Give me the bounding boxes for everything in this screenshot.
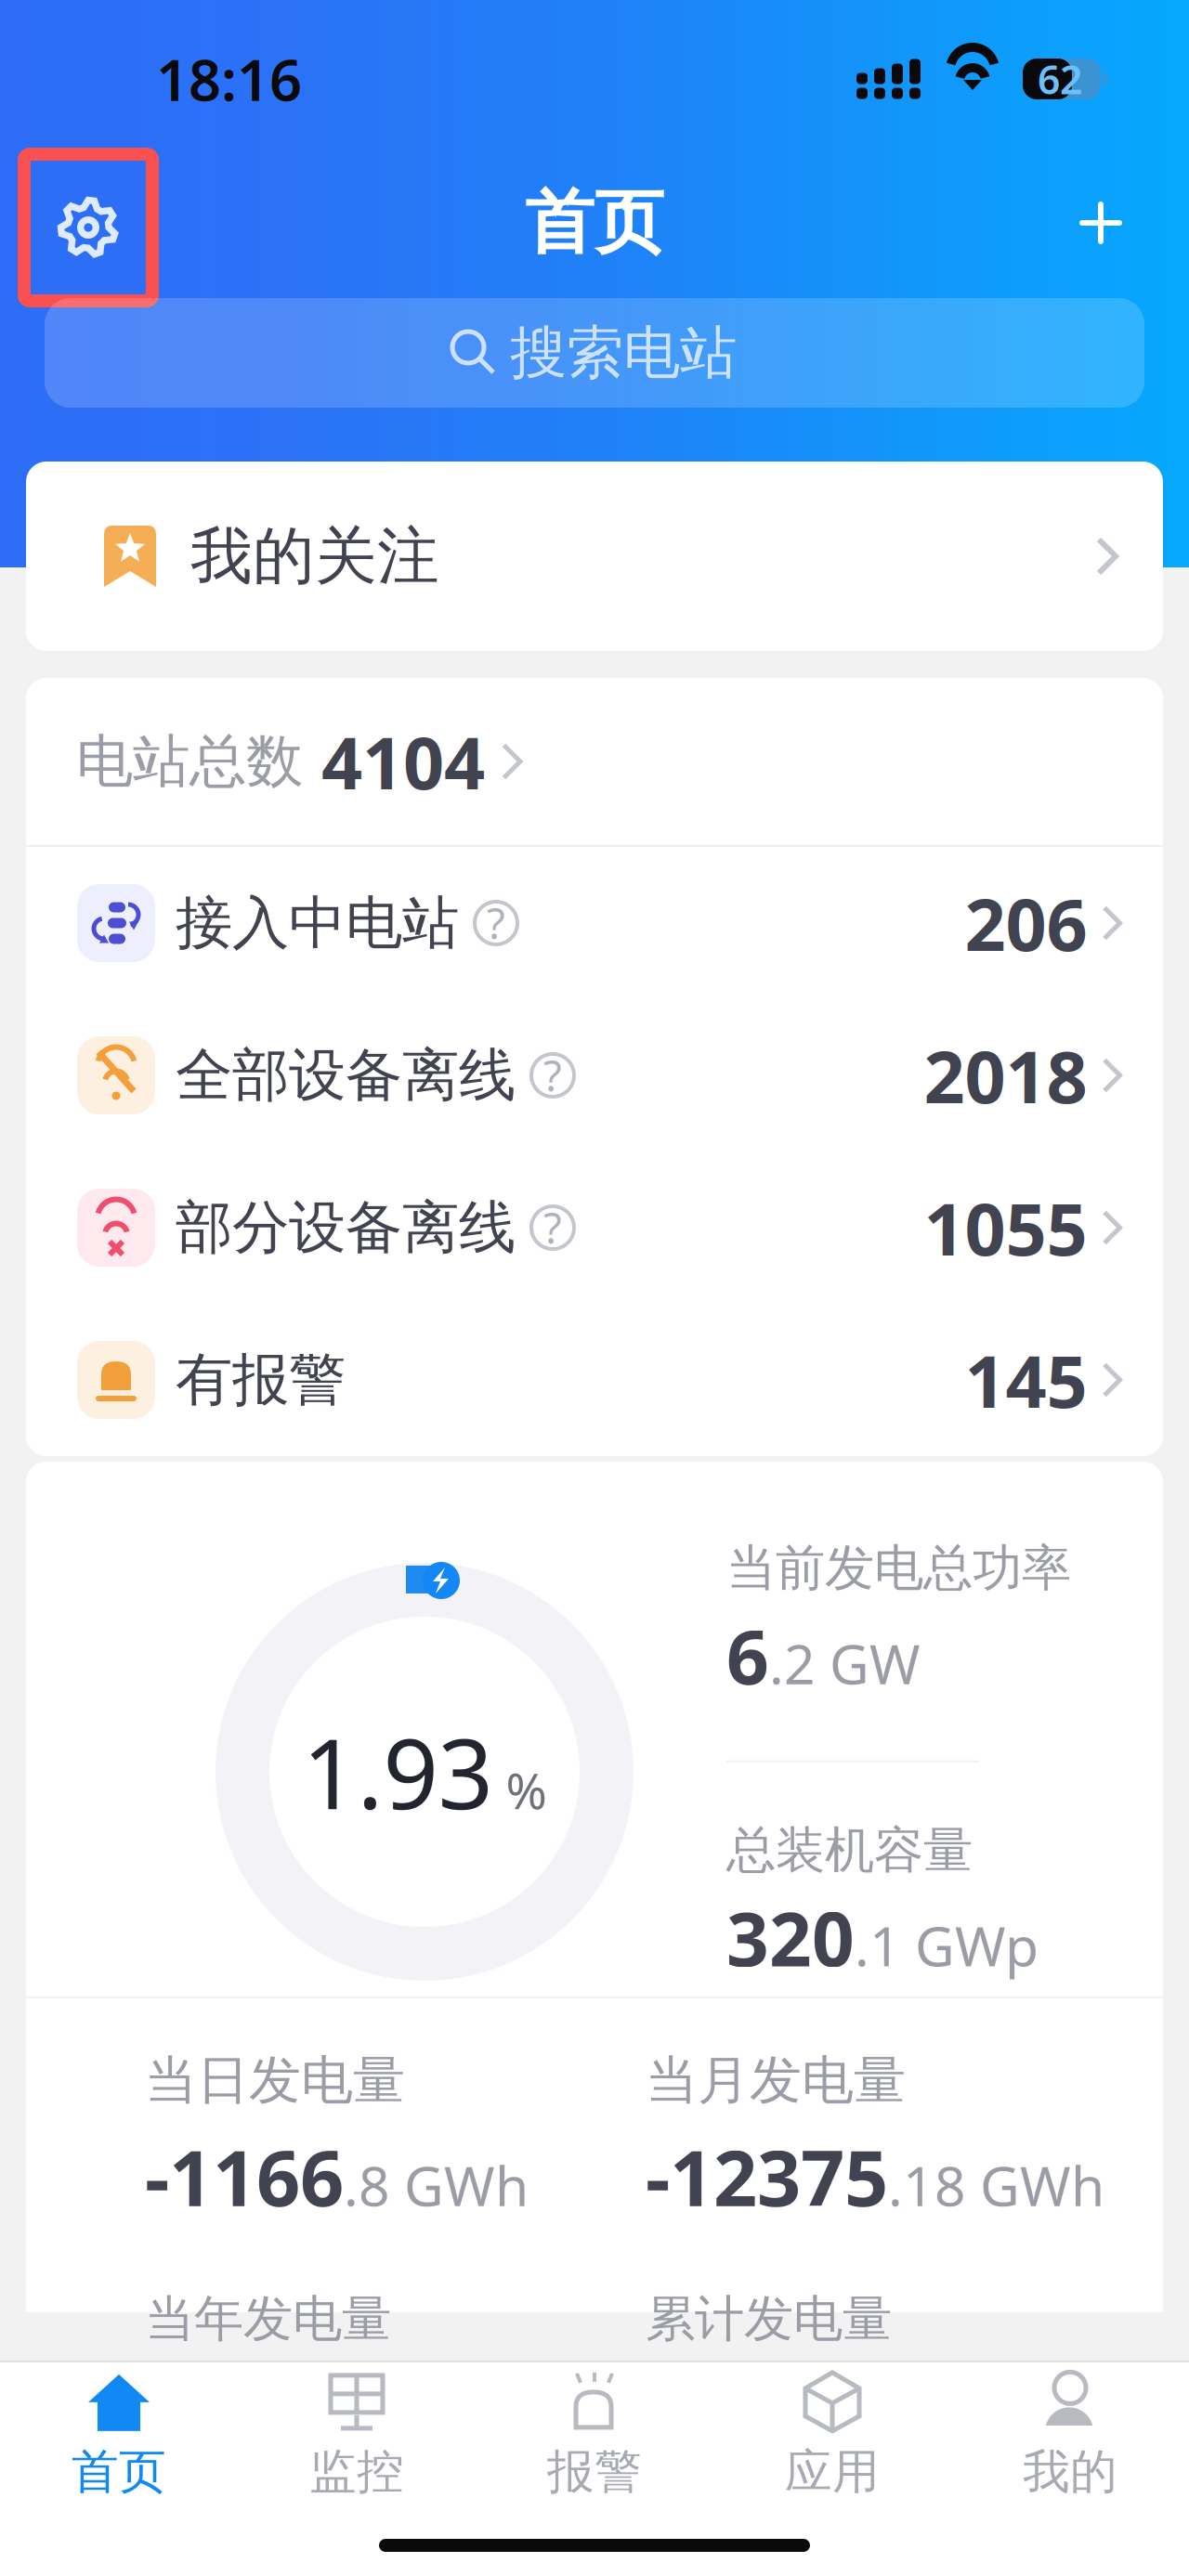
staticText: 18:16 bbox=[156, 41, 302, 117]
staticText: 6 bbox=[726, 1606, 769, 1705]
button[interactable]: 有报警 bbox=[26, 1304, 1163, 1456]
staticText: ? bbox=[487, 895, 505, 951]
button[interactable]: Add bbox=[1050, 172, 1152, 274]
staticText: 1.93 bbox=[302, 1708, 493, 1836]
staticText: ? bbox=[543, 1200, 562, 1256]
staticText: -12375 bbox=[646, 2125, 888, 2227]
button[interactable]: 搜索电站 bbox=[45, 298, 1144, 408]
staticText: -1166 bbox=[145, 2125, 344, 2227]
staticText: ? bbox=[543, 1047, 562, 1103]
staticText: 当月发电量 bbox=[646, 2049, 906, 2112]
staticText: 当年发电量 bbox=[145, 2289, 391, 2349]
staticText: 当前发电总功率 bbox=[726, 1538, 1071, 1599]
button[interactable]: 首页 bbox=[0, 2362, 238, 2507]
button[interactable]: 我的关注 bbox=[26, 462, 1163, 651]
staticText: 62 bbox=[1038, 53, 1082, 105]
button[interactable]: 电站总数 bbox=[26, 678, 1163, 845]
staticText: 电站总数 bbox=[76, 726, 303, 796]
staticText: % bbox=[506, 1757, 547, 1823]
staticText: 当日发电量 bbox=[145, 2049, 405, 2112]
staticText: 部分设备离线 bbox=[176, 1193, 516, 1263]
staticText: 145 bbox=[965, 1332, 1087, 1428]
staticText: 报警 bbox=[547, 2443, 642, 2501]
button[interactable]: 全部设备离线 bbox=[26, 999, 1163, 1151]
staticText: 我的 bbox=[1023, 2443, 1117, 2501]
staticText: 接入中电站 bbox=[176, 888, 459, 958]
staticText: 首页 bbox=[525, 180, 664, 265]
staticText: 总装机容量 bbox=[726, 1820, 973, 1881]
button[interactable]: 监控 bbox=[238, 2362, 476, 2507]
staticText: 首页 bbox=[72, 2443, 166, 2501]
staticText: 有报警 bbox=[176, 1345, 346, 1415]
staticText: 搜索电站 bbox=[510, 318, 737, 388]
staticText: 累计发电量 bbox=[646, 2289, 892, 2349]
button[interactable]: 部分设备离线 bbox=[26, 1151, 1163, 1304]
staticText: 2018 bbox=[924, 1028, 1087, 1123]
button[interactable]: Settings bbox=[24, 150, 152, 296]
staticText: 应用 bbox=[785, 2443, 880, 2501]
staticText: 1055 bbox=[924, 1180, 1087, 1275]
staticText: 4104 bbox=[321, 714, 485, 809]
staticText: 我的关注 bbox=[190, 518, 439, 594]
staticText: 监控 bbox=[309, 2443, 404, 2501]
staticText: .2 GW bbox=[769, 1627, 921, 1699]
staticText: 206 bbox=[965, 875, 1087, 971]
button[interactable]: 接入中电站 bbox=[26, 847, 1163, 999]
button[interactable]: 应用 bbox=[713, 2362, 951, 2507]
staticText: .18 GWh bbox=[888, 2149, 1104, 2221]
button[interactable]: 报警 bbox=[476, 2362, 713, 2507]
staticText: 全部设备离线 bbox=[176, 1040, 516, 1110]
staticText: 320 bbox=[726, 1888, 855, 1987]
staticText: .1 GWp bbox=[855, 1909, 1039, 1981]
button[interactable]: 我的 bbox=[951, 2362, 1189, 2507]
staticText: .8 GWh bbox=[344, 2149, 529, 2221]
